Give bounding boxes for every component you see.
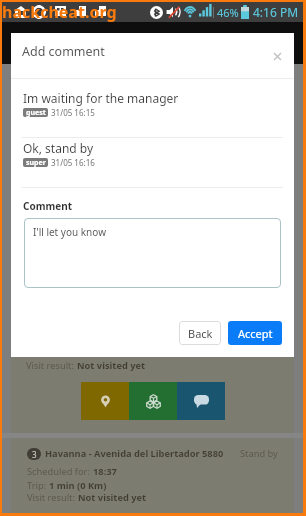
staticText: Visit result: [26,359,77,372]
staticText: Havanna - Avenida del Libertador 5880 [45,447,224,460]
staticText: Accept [238,326,273,341]
staticText: Stand by [240,447,278,460]
staticText: 31/05 16:15 [51,107,95,118]
staticText: Not visited yet [77,359,146,372]
staticText: Not visited yet [78,491,147,504]
staticText: hackcheat.org [2,1,117,23]
button[interactable]: Close [268,47,286,65]
staticText: 31/05 16:16 [51,157,95,168]
button[interactable]: I'll let you know [24,218,281,288]
staticText: Ok, stand by [23,140,94,156]
staticText: 3 [32,449,37,460]
button[interactable]: Packages [129,382,177,420]
button[interactable]: Comments [177,382,225,420]
staticText: 4:16 PM [253,4,299,20]
button[interactable]: Accept [228,321,282,345]
button[interactable]: Back [179,321,221,345]
staticText: 1 min (0 Km) [49,479,107,492]
staticText: Trip: [27,479,49,492]
staticText: 18:37 [93,465,117,478]
staticText: Add comment [22,43,105,60]
staticText: 46% [217,5,239,20]
staticText: super [26,158,46,167]
button[interactable]: Navigate [81,382,129,420]
staticText: Scheduled for: [27,465,93,478]
staticText: guest [26,108,46,117]
staticText: Im waiting for the manager [23,90,179,106]
staticText: Back [188,326,213,341]
staticText: Comment [23,199,72,213]
staticText: I'll let you know [33,225,106,239]
staticText: Visit result: [27,491,78,504]
